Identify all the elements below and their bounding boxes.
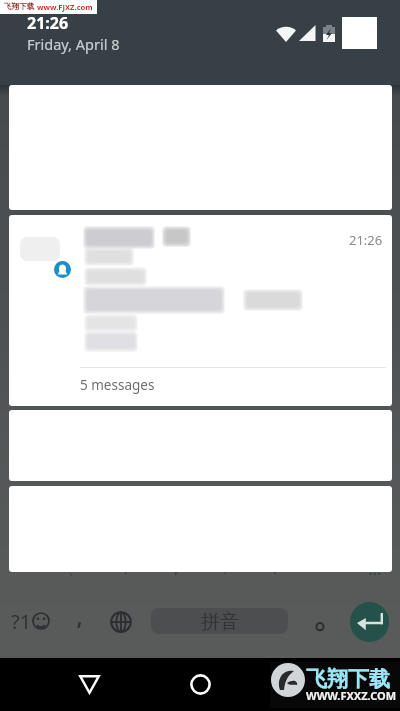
button[interactable]: ～ bbox=[300, 552, 350, 584]
button[interactable]: ！ bbox=[250, 552, 300, 584]
staticText: ！ bbox=[267, 558, 284, 579]
button[interactable] bbox=[304, 608, 336, 640]
button[interactable]: Enter bbox=[350, 602, 389, 642]
staticText: 拼音 bbox=[201, 610, 239, 634]
staticText: — bbox=[17, 557, 34, 580]
staticText: www.FJXZ.com bbox=[37, 2, 93, 12]
button[interactable]: Back bbox=[69, 664, 109, 704]
staticText: 飞翔下载 bbox=[4, 2, 35, 12]
staticText: 、 bbox=[67, 558, 84, 579]
staticText: ； bbox=[167, 558, 184, 579]
button[interactable]: ： bbox=[100, 552, 150, 584]
button[interactable]: 拼音 bbox=[151, 608, 288, 634]
staticText: ?1 bbox=[11, 608, 32, 635]
button[interactable]: ？ bbox=[200, 552, 250, 584]
staticText: , bbox=[76, 596, 84, 628]
button[interactable]: 21:26 bbox=[9, 215, 392, 406]
button[interactable]: ； bbox=[150, 552, 200, 584]
staticText: … bbox=[368, 557, 382, 580]
staticText: WWW.FXXZ.COM bbox=[306, 688, 397, 703]
button[interactable]: , bbox=[64, 596, 96, 628]
button[interactable]: — bbox=[0, 552, 50, 584]
button[interactable]: ?1 bbox=[11, 605, 55, 637]
button[interactable]: Home bbox=[180, 664, 220, 704]
staticText: 21:26 bbox=[27, 12, 69, 34]
staticText: 5 messages bbox=[80, 376, 155, 394]
button[interactable]: Switch keyboard language bbox=[105, 606, 137, 638]
staticText: 21:26 bbox=[349, 231, 383, 249]
staticText: 飞翔下载 bbox=[306, 666, 390, 692]
staticText: ～ bbox=[317, 558, 334, 579]
staticText: ？ bbox=[217, 558, 234, 579]
staticText: ： bbox=[117, 558, 134, 579]
button[interactable]: 、 bbox=[50, 552, 100, 584]
button[interactable]: … bbox=[350, 552, 400, 584]
staticText: Friday, April 8 bbox=[27, 34, 120, 54]
